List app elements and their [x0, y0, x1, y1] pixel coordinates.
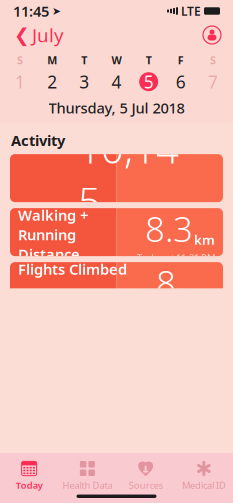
staticText: Health Data — [62, 479, 112, 491]
staticText: 8.3 — [145, 205, 193, 251]
staticText: M — [47, 53, 57, 67]
staticText: Thursday, 5 Jul 2018 — [48, 98, 184, 118]
staticText: F — [178, 53, 184, 67]
staticText: ➤ — [52, 5, 61, 17]
button[interactable]: 5 — [133, 70, 165, 93]
staticText: Resting Heart Rate — [18, 482, 116, 503]
staticText: LTE — [181, 3, 201, 19]
staticText: 116 — [125, 428, 185, 474]
staticText: 1 — [15, 70, 25, 93]
button[interactable]: Steps — [0, 154, 233, 208]
button[interactable]: Health Data — [58, 458, 117, 493]
button[interactable]: Sources — [116, 458, 175, 493]
button[interactable]: Medical ID — [175, 458, 233, 493]
staticText: 2 — [47, 70, 57, 93]
staticText: T — [146, 53, 152, 67]
staticText: Activity — [11, 131, 65, 150]
staticText: steps — [180, 207, 215, 225]
staticText: ❮ — [14, 24, 30, 46]
staticText: Distance — [18, 244, 80, 264]
button[interactable]: 6 — [165, 70, 197, 93]
staticText: Walking Heart — [18, 428, 76, 467]
staticText: Walking + Running — [18, 205, 88, 244]
staticText: Rate Average — [18, 467, 115, 487]
staticText: July — [32, 23, 64, 47]
staticText: S — [17, 53, 23, 67]
staticText: 7 — [208, 70, 218, 93]
staticText: 59 — [145, 482, 185, 503]
staticText: S — [210, 53, 216, 67]
staticText: Today at 11:22 PM — [137, 474, 215, 487]
staticText: 10,145 — [78, 121, 179, 227]
staticText: floors — [177, 285, 215, 302]
staticText: Sources — [129, 479, 163, 491]
staticText: 5 — [144, 70, 154, 93]
staticText: 4 — [111, 70, 121, 93]
button[interactable]: Walking Heart — [0, 431, 233, 485]
button[interactable]: Today — [0, 458, 58, 493]
staticText: Medical ID — [182, 479, 226, 491]
staticText: 3 — [79, 70, 89, 93]
button[interactable]: Profile — [197, 22, 227, 48]
staticText: W — [111, 53, 121, 67]
staticText: T — [81, 53, 87, 67]
staticText: bpm — [186, 454, 215, 471]
staticText: km — [194, 231, 215, 248]
button[interactable]: ❮ — [6, 19, 72, 51]
button[interactable]: 4 — [100, 70, 132, 93]
button[interactable]: 1 — [4, 70, 36, 93]
button[interactable]: 2 — [36, 70, 68, 93]
button[interactable]: 7 — [197, 70, 229, 93]
staticText: 6 — [176, 70, 186, 93]
staticText: 11:45 — [13, 1, 49, 21]
staticText: Today at 11:31 PM — [137, 228, 215, 240]
staticText: Today — [16, 479, 43, 491]
button[interactable]: Resting Heart Rate — [0, 485, 233, 503]
staticText: Steps — [18, 121, 57, 141]
button[interactable]: Walking + Running — [0, 208, 233, 262]
button[interactable]: 3 — [68, 70, 100, 93]
button[interactable]: Flights Climbed — [0, 262, 233, 316]
staticText: 8 — [156, 259, 176, 305]
staticText: Flights Climbed — [18, 259, 127, 279]
staticText: Today at 11:31 PM — [137, 251, 215, 264]
